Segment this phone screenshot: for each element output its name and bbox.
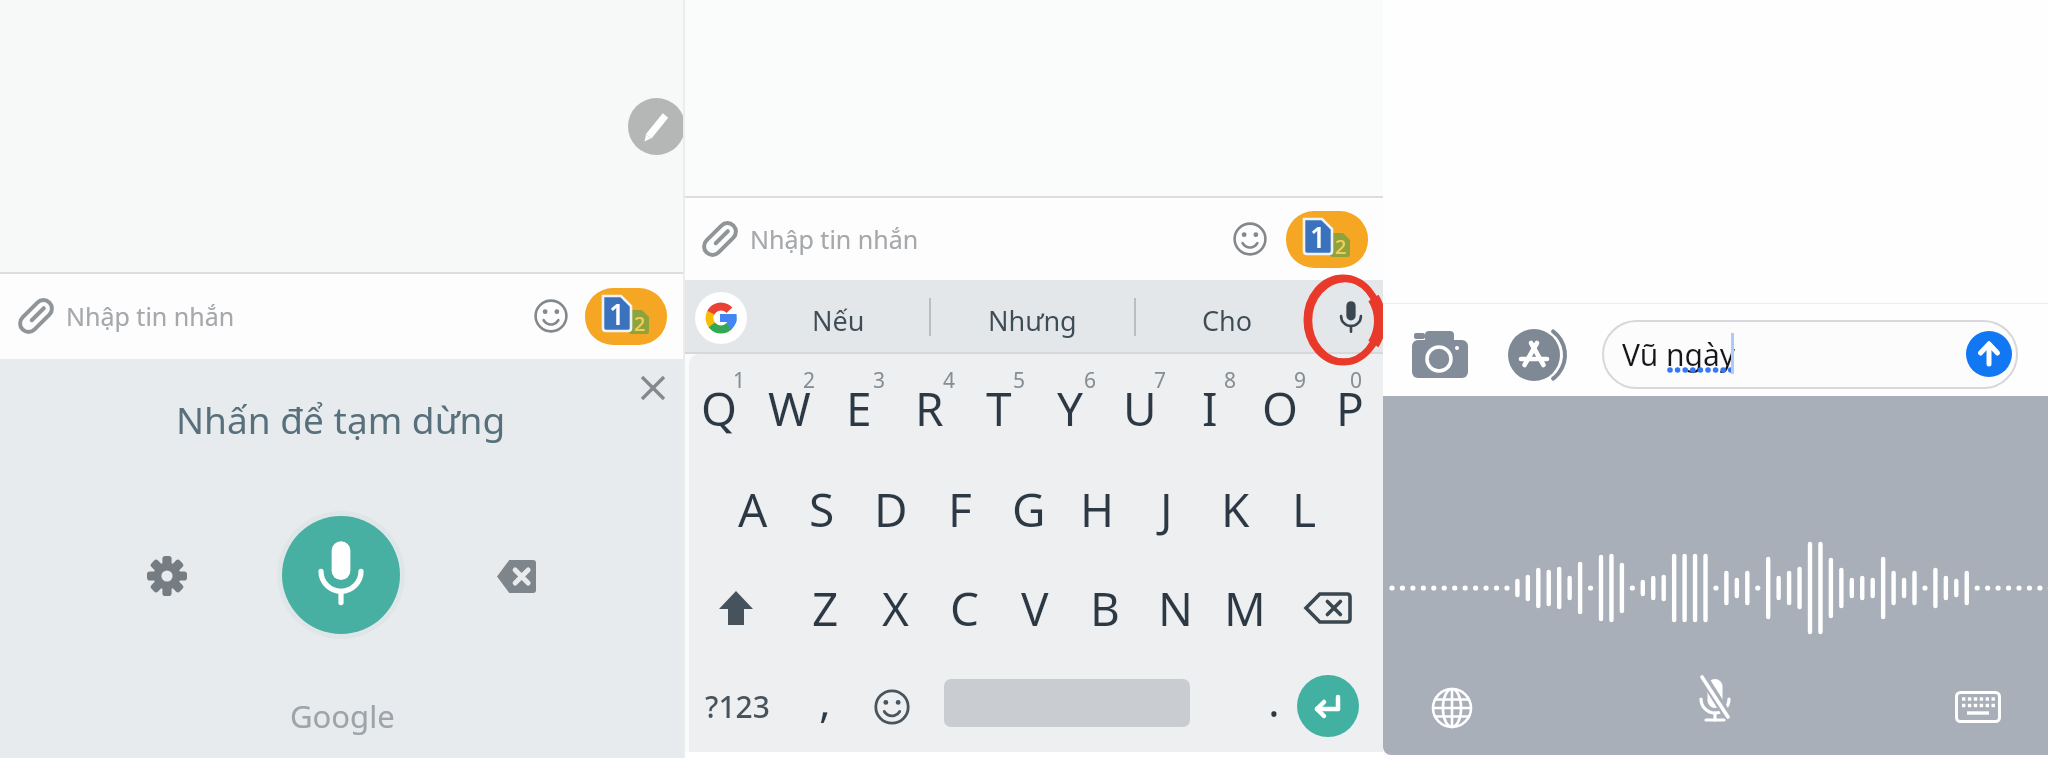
staticText: Vũ ngày (1622, 334, 1736, 375)
button[interactable]: K (1201, 462, 1270, 556)
button[interactable] (497, 558, 538, 595)
button[interactable]: V (1000, 561, 1070, 655)
button[interactable] (282, 516, 400, 634)
staticText: 5 (1013, 366, 1026, 395)
button[interactable] (1232, 221, 1268, 257)
staticText: O (1262, 377, 1298, 440)
staticText: E (846, 377, 872, 440)
staticText: Q (701, 377, 737, 440)
button[interactable] (1955, 691, 2001, 723)
button[interactable] (143, 552, 191, 600)
staticText: K (1221, 478, 1250, 541)
staticText: L (1292, 478, 1317, 541)
staticText: Z (812, 577, 839, 640)
button[interactable]: Q (684, 361, 754, 455)
staticText: Nếu (812, 302, 865, 339)
button[interactable]: T (964, 361, 1034, 455)
staticText: M (1224, 577, 1266, 640)
staticText: X (882, 577, 909, 640)
staticText: Nhấn để tạm dừng (176, 394, 506, 444)
staticText: I (1202, 377, 1218, 440)
staticText: 2 (803, 366, 816, 395)
staticText: Cho (1202, 302, 1253, 339)
staticText: . (1268, 670, 1280, 730)
button[interactable]: Cho (1157, 285, 1297, 355)
staticText: Nhưng (988, 302, 1077, 339)
staticText: 3 (873, 366, 886, 395)
button[interactable] (533, 298, 569, 334)
staticText: T (986, 377, 1012, 440)
staticText: R (915, 377, 944, 440)
button[interactable]: R (894, 361, 964, 455)
staticText: Y (1057, 377, 1084, 440)
staticText: 2 (1335, 233, 1347, 260)
button[interactable]: N (1140, 561, 1210, 655)
button[interactable]: . (1244, 660, 1304, 740)
button[interactable]: Nếu (768, 285, 908, 355)
button[interactable]: I (1175, 361, 1245, 455)
button[interactable] (1306, 592, 1352, 624)
button[interactable]: Y (1035, 361, 1105, 455)
staticText: V (1021, 577, 1049, 640)
staticText: 2 (634, 310, 646, 337)
button[interactable] (1411, 327, 1471, 379)
button[interactable]: U (1105, 361, 1175, 455)
button[interactable]: 1 (585, 288, 667, 345)
button[interactable]: S (787, 462, 856, 556)
staticText: P (1336, 377, 1364, 440)
button[interactable]: J (1132, 462, 1201, 556)
staticText: 7 (1154, 366, 1167, 395)
button[interactable]: Nhưng (947, 285, 1117, 355)
staticText: 0 (1350, 366, 1363, 395)
button[interactable]: H (1063, 462, 1132, 556)
button[interactable]: B (1070, 561, 1140, 655)
button[interactable]: 1 (1286, 211, 1368, 268)
button[interactable] (0, 274, 684, 360)
button[interactable]: W (754, 361, 824, 455)
button[interactable] (1693, 681, 1737, 729)
staticText: Nhập tin nhắn (750, 222, 919, 256)
button[interactable]: G (994, 462, 1063, 556)
button[interactable]: D (856, 462, 925, 556)
button[interactable] (628, 98, 684, 155)
button[interactable]: X (860, 561, 930, 655)
button[interactable] (873, 688, 911, 726)
staticText: 6 (1084, 366, 1097, 395)
staticText: , (819, 670, 831, 730)
staticText: C (950, 577, 980, 640)
staticText: S (809, 478, 835, 541)
button[interactable] (1297, 675, 1359, 737)
button[interactable] (1966, 331, 2012, 377)
button[interactable]: C (930, 561, 1000, 655)
staticText: 4 (943, 366, 956, 395)
staticText: H (1080, 478, 1115, 541)
staticText: W (768, 377, 811, 440)
button[interactable] (1507, 329, 1585, 381)
staticText: ?123 (705, 686, 770, 727)
button[interactable]: L (1270, 462, 1339, 556)
button[interactable] (695, 292, 747, 344)
button[interactable] (1602, 320, 2018, 389)
staticText: F (948, 478, 972, 541)
button[interactable] (712, 584, 760, 632)
button[interactable] (636, 371, 670, 405)
button[interactable]: ?123 (684, 666, 792, 746)
staticText: G (1012, 478, 1046, 541)
staticText: Nhập tin nhắn (66, 299, 235, 333)
staticText: 9 (1294, 366, 1307, 395)
button[interactable]: E (824, 361, 894, 455)
button[interactable]: F (925, 462, 994, 556)
button[interactable] (684, 198, 1383, 281)
staticText: U (1123, 377, 1157, 440)
button[interactable]: A (718, 462, 787, 556)
button[interactable]: O (1245, 361, 1315, 455)
staticText: D (874, 478, 908, 541)
button[interactable] (1431, 687, 1473, 729)
button[interactable]: , (795, 660, 855, 740)
button[interactable]: M (1210, 561, 1280, 655)
button[interactable] (1329, 294, 1373, 342)
staticText: B (1090, 577, 1120, 640)
button[interactable]: P (1315, 361, 1383, 455)
button[interactable]: Z (790, 561, 860, 655)
